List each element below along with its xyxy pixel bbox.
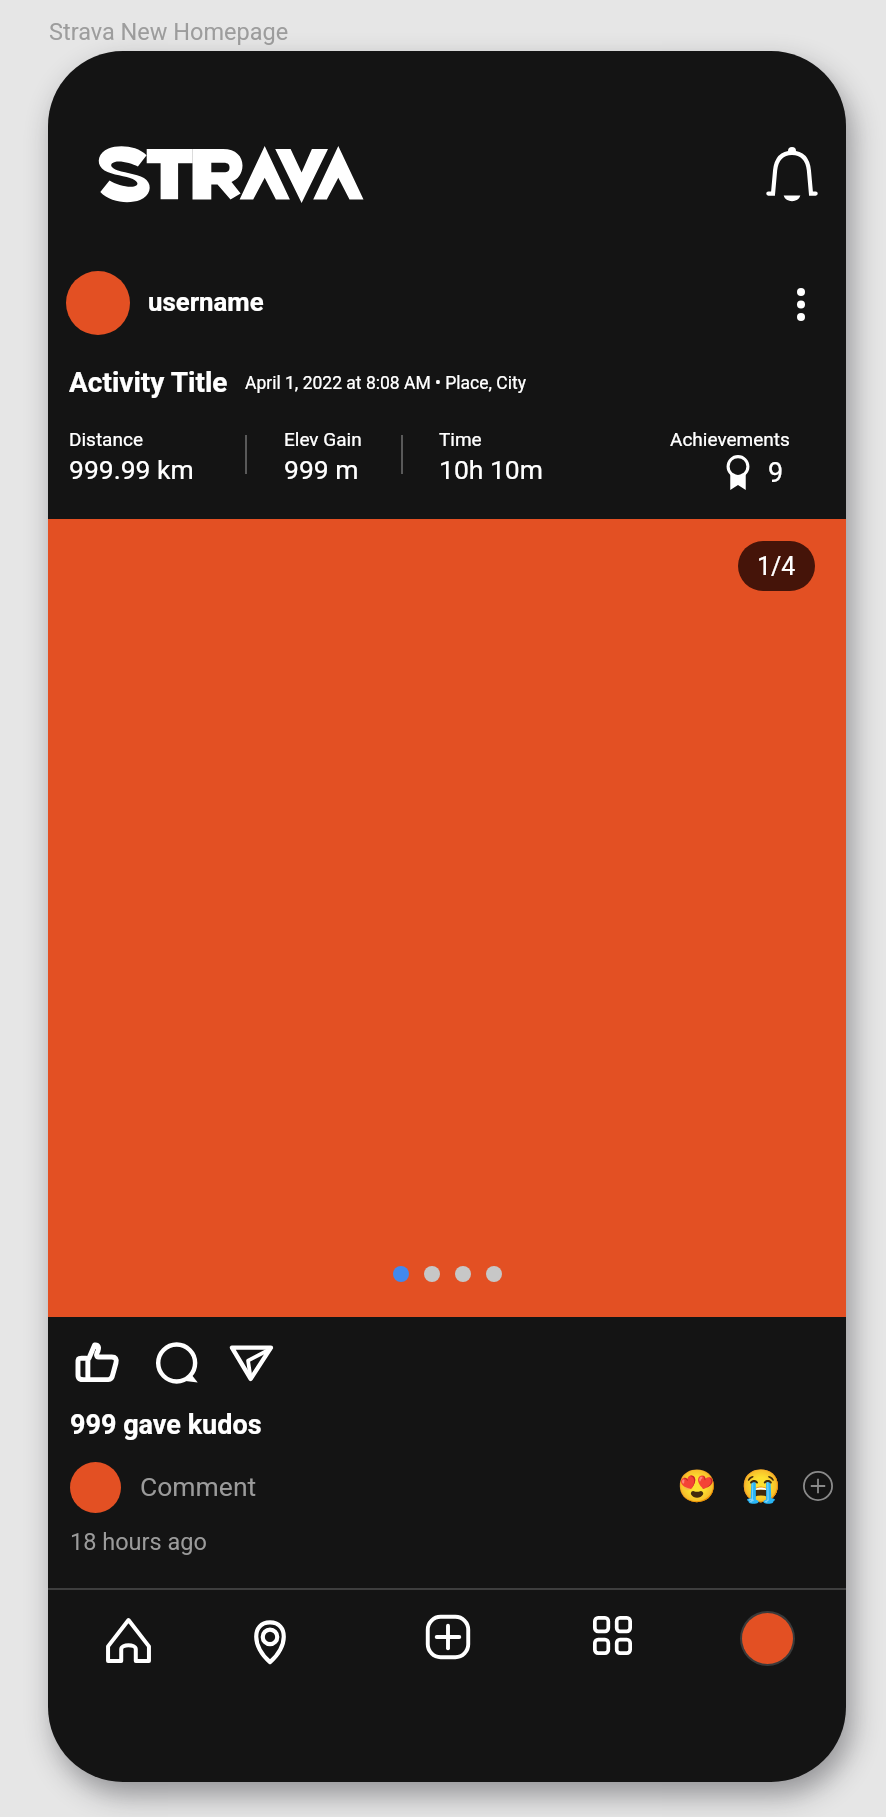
staticText: 1/4 xyxy=(757,552,796,581)
button[interactable]: Add reaction xyxy=(790,1458,846,1514)
staticText: 😍 xyxy=(677,1467,717,1505)
button[interactable]: Share xyxy=(221,1331,285,1395)
button[interactable]: username xyxy=(148,287,264,317)
button[interactable]: Maps xyxy=(232,1604,308,1680)
staticText: 9 xyxy=(768,457,784,489)
staticText: 999.99 km xyxy=(69,454,194,485)
button[interactable]: 999 gave kudos xyxy=(70,1409,262,1441)
staticText: 18 hours ago xyxy=(70,1528,207,1556)
button[interactable]: Strava home xyxy=(96,144,368,201)
button[interactable]: 1/4 xyxy=(738,541,815,591)
staticText: Elev Gain xyxy=(284,428,362,450)
staticText: 10h 10m xyxy=(439,454,543,485)
staticText: 999 m xyxy=(284,454,359,485)
staticText: Distance xyxy=(69,428,143,450)
button[interactable]: Photo 3 xyxy=(455,1266,471,1282)
button[interactable]: Crying reaction xyxy=(732,1457,790,1515)
button[interactable]: Comment xyxy=(147,1331,211,1395)
staticText: April 1, 2022 at 8:08 AM • Place, City xyxy=(245,373,526,394)
staticText: 😭 xyxy=(741,1467,781,1505)
button[interactable]: You xyxy=(729,1600,805,1676)
button[interactable]: Record xyxy=(410,1599,486,1675)
button[interactable]: More options xyxy=(773,276,829,332)
button[interactable]: Heart eyes reaction xyxy=(668,1457,726,1515)
button[interactable]: Groups xyxy=(574,1597,650,1673)
staticText: Strava New Homepage xyxy=(49,18,289,46)
staticText: Time xyxy=(439,428,482,450)
button[interactable]: Comment xyxy=(140,1471,257,1502)
button[interactable]: Photo 4 xyxy=(486,1266,502,1282)
button[interactable]: Home xyxy=(90,1602,166,1678)
button[interactable]: Photo 1 xyxy=(393,1266,409,1282)
staticText: Activity Title xyxy=(69,366,228,399)
button[interactable]: Profile photo xyxy=(66,271,130,335)
staticText: Achievements xyxy=(670,428,790,450)
button[interactable]: Kudos xyxy=(66,1331,130,1395)
button[interactable]: Notifications xyxy=(760,143,824,207)
button[interactable]: Photo 2 xyxy=(424,1266,440,1282)
staticText: username xyxy=(148,287,264,317)
